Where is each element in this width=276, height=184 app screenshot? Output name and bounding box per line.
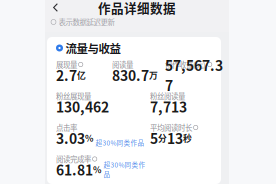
staticText: 5 bbox=[150, 128, 158, 148]
staticText: 2.7 bbox=[56, 65, 77, 85]
staticText: 3.03 bbox=[56, 128, 85, 148]
staticText: % bbox=[85, 132, 93, 144]
button[interactable]: Back bbox=[48, 0, 63, 15]
staticText: 粉丝阅读量 bbox=[150, 91, 185, 101]
staticText: 7,713 bbox=[150, 96, 187, 117]
staticText: 点击率 bbox=[56, 122, 77, 133]
staticText: 流量与收益 bbox=[65, 40, 120, 56]
staticText: 分 bbox=[158, 132, 167, 144]
staticText: 阅读完成率 bbox=[56, 154, 91, 164]
staticText: 130,462 bbox=[56, 96, 109, 117]
staticText: 粉丝展现量 bbox=[56, 91, 91, 101]
staticText: 13 bbox=[167, 128, 183, 148]
staticText: 创作收益(元) bbox=[165, 59, 206, 70]
staticText: 亿 bbox=[77, 69, 86, 81]
staticText: 超30%同类作品 bbox=[95, 138, 144, 147]
staticText: 万 bbox=[149, 69, 158, 81]
staticText: 展现量 bbox=[56, 59, 77, 70]
staticText: 830.7 bbox=[112, 65, 149, 85]
staticText: 作品详细数据 bbox=[98, 0, 176, 16]
staticText: 超30%同类作品 bbox=[103, 160, 145, 179]
staticText: % bbox=[93, 163, 101, 176]
staticText: 61.81 bbox=[56, 159, 93, 180]
staticText: 平均阅读时长 bbox=[150, 122, 192, 133]
staticText: 阅读量 bbox=[112, 59, 133, 70]
staticText: 秒 bbox=[183, 132, 192, 144]
staticText: 表示数据延迟更新 bbox=[58, 17, 114, 27]
staticText: 57,567.37 bbox=[165, 55, 223, 95]
